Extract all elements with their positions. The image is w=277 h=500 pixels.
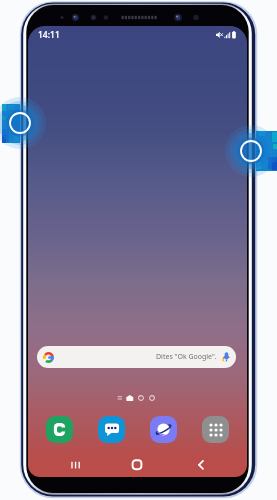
button[interactable]: Phone: [46, 416, 73, 443]
staticText: 14:11: [38, 29, 60, 41]
button[interactable]: Messages: [98, 416, 125, 443]
button[interactable]: Home: [119, 454, 155, 476]
button[interactable]: Power key: [256, 131, 277, 171]
staticText: Dites "Ok Google".: [156, 352, 217, 362]
button[interactable]: Recents: [57, 454, 93, 476]
button[interactable]: Dites "Ok Google".: [37, 346, 236, 368]
button[interactable]: Apps: [202, 416, 229, 443]
button[interactable]: Internet: [150, 416, 177, 443]
button[interactable]: Bixby key: [2, 104, 20, 143]
button[interactable]: Back: [183, 454, 219, 476]
